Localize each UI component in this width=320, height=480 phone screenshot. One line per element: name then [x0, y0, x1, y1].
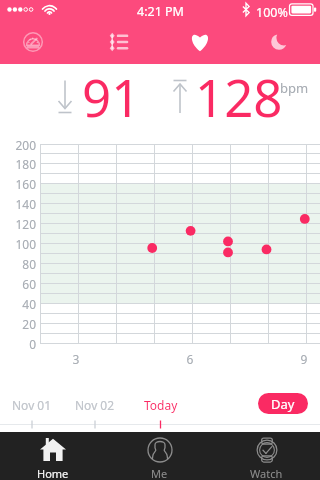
button[interactable]: Nov 02 — [64, 396, 126, 414]
staticText: Nov 01 — [12, 397, 52, 413]
staticText: Home — [37, 466, 69, 480]
staticText: 160 — [0, 176, 36, 192]
staticText: 128 — [195, 62, 283, 131]
button[interactable]: Nov 01 — [1, 396, 63, 414]
button[interactable]: Me — [106, 432, 213, 480]
staticText: 6 — [180, 351, 200, 367]
staticText: 200 — [0, 137, 36, 153]
staticText: Today — [144, 397, 178, 413]
staticText: 0 — [0, 336, 36, 352]
button[interactable]: Home — [0, 432, 106, 480]
staticText: 3 — [66, 351, 86, 367]
staticText: 91 — [82, 62, 141, 131]
staticText: 80 — [0, 256, 36, 272]
staticText: bpm — [280, 79, 309, 97]
staticText: 40 — [0, 296, 36, 312]
button[interactable]: Measurements — [99, 22, 139, 62]
staticText: Nov 02 — [75, 397, 115, 413]
staticText: 100 — [0, 236, 36, 252]
staticText: 20 — [0, 316, 36, 332]
staticText: 180 — [0, 156, 36, 172]
button[interactable]: Day — [258, 393, 308, 414]
staticText: 100% — [256, 4, 288, 21]
button[interactable]: Watch — [213, 432, 320, 480]
staticText: 4:21 PM — [137, 3, 184, 20]
button[interactable]: Today — [130, 396, 192, 414]
staticText: Day — [271, 395, 295, 413]
button[interactable]: Sleep — [259, 22, 299, 62]
staticText: 60 — [0, 276, 36, 292]
button[interactable]: Heart rate — [180, 22, 220, 62]
staticText: Me — [151, 466, 168, 480]
staticText: 140 — [0, 196, 36, 212]
staticText: 120 — [0, 216, 36, 232]
button[interactable]: Dashboard — [13, 22, 53, 62]
staticText: 9 — [294, 351, 314, 367]
staticText: Watch — [250, 466, 283, 480]
